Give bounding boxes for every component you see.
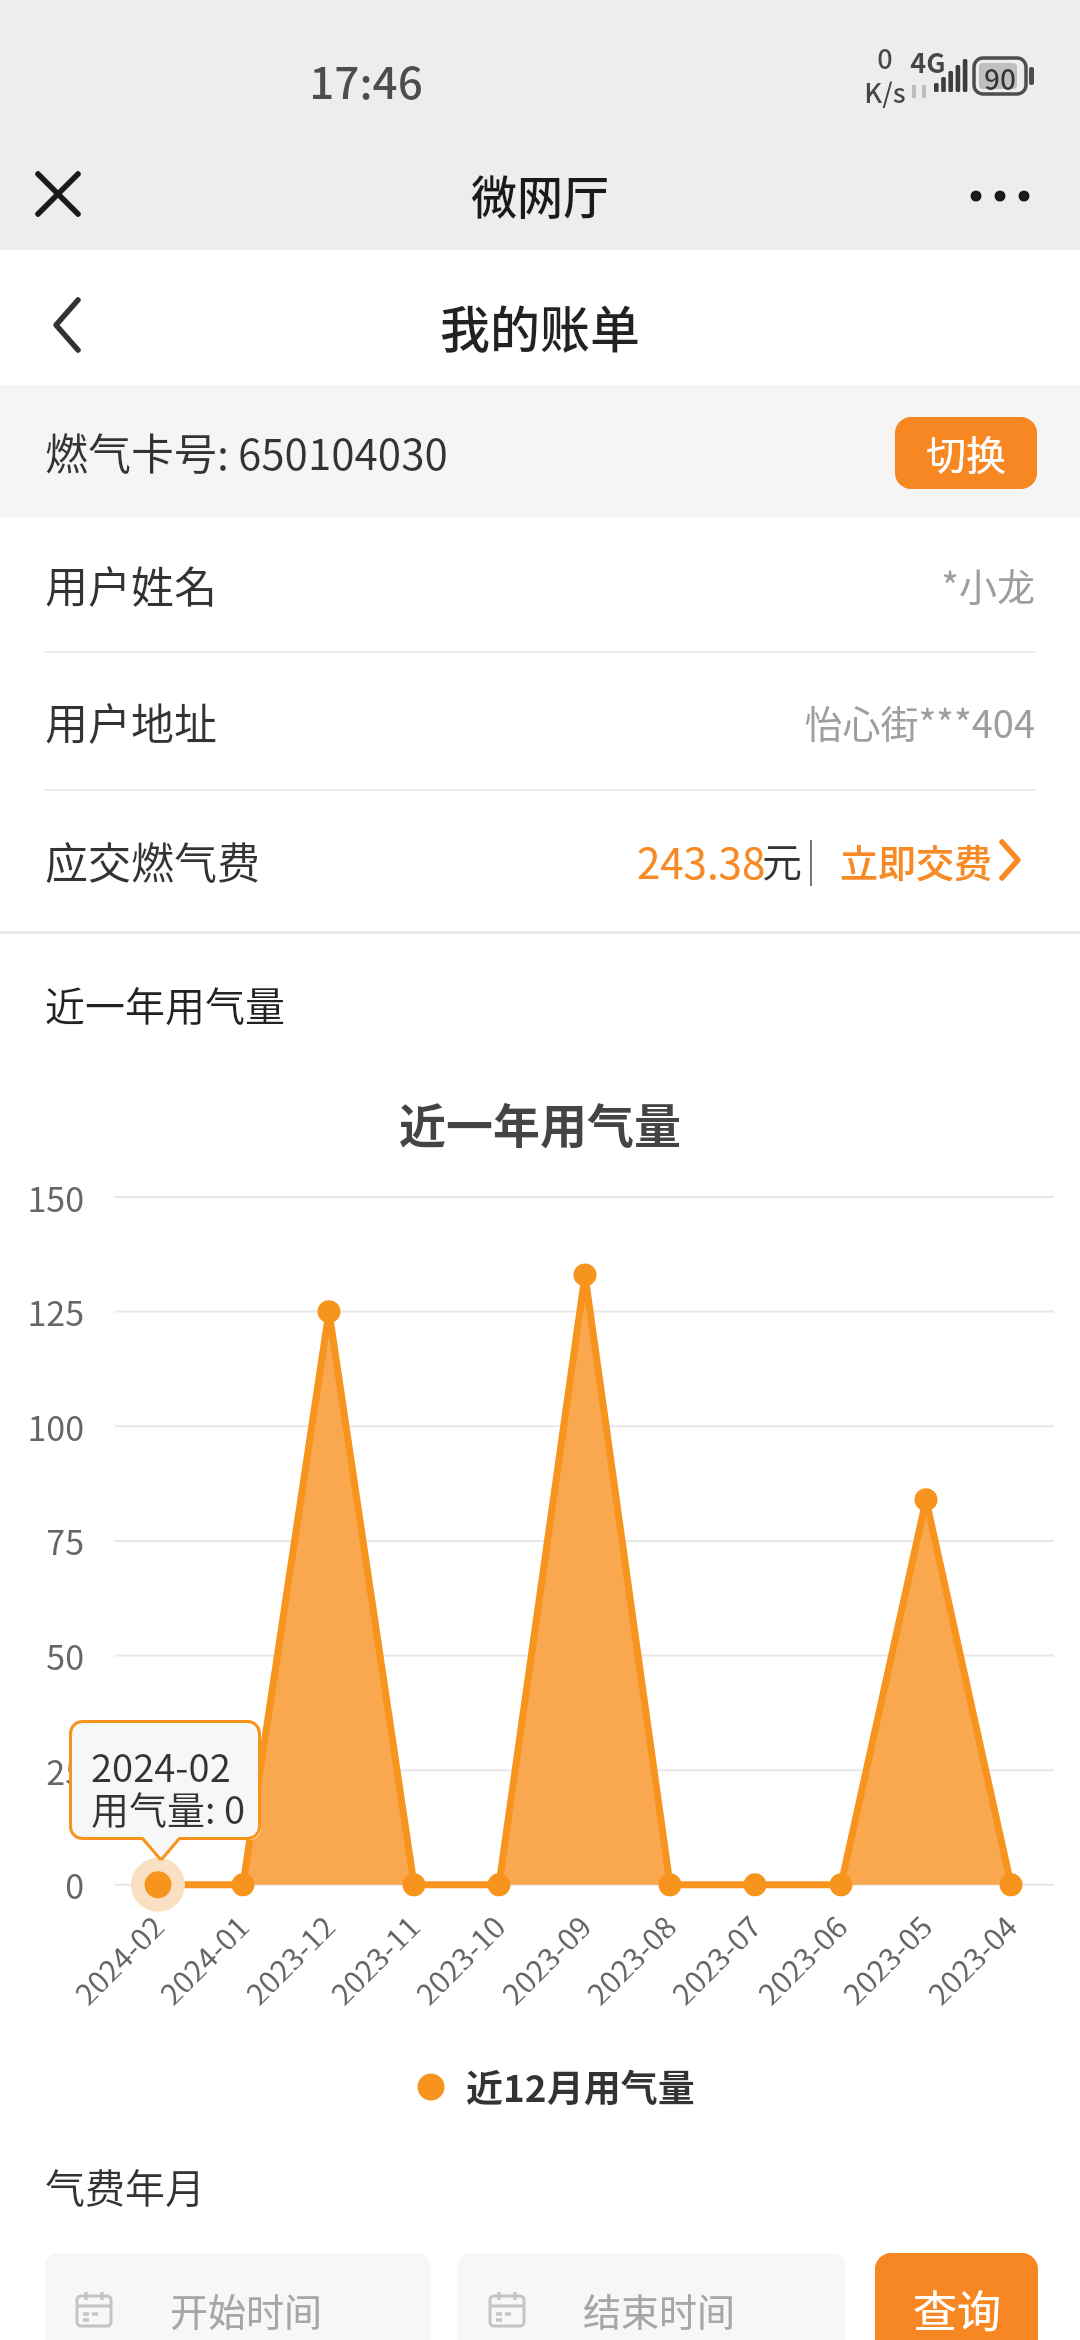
staticText: 元 (762, 831, 802, 889)
staticText: 75 (46, 1516, 84, 1565)
button[interactable] (950, 160, 1050, 230)
staticText: 2023-06 (746, 1905, 849, 2007)
staticText: 90 (984, 58, 1016, 94)
staticText: 切换 (926, 424, 1006, 482)
staticText: 2023-11 (319, 1905, 422, 2007)
staticText: 4G (910, 42, 946, 74)
staticText: 50 (46, 1631, 84, 1680)
staticText: 近一年用气量 (399, 1088, 681, 1152)
staticText: 用户姓名 (45, 553, 217, 615)
staticText: 150 (27, 1173, 84, 1222)
staticText: 开始时间 (170, 2282, 323, 2337)
staticText: 2023-10 (404, 1905, 507, 2007)
staticText: 近一年用气量 (45, 975, 285, 1033)
button[interactable]: 查询 (875, 2253, 1038, 2340)
button[interactable] (990, 830, 1035, 890)
staticText: *小龙 (941, 557, 1035, 612)
staticText: 燃气卡号: (45, 420, 229, 482)
button[interactable]: 切换 (895, 417, 1037, 489)
staticText: 17:46 (309, 48, 423, 104)
staticText: 用气量: 0 (91, 1780, 246, 1828)
staticText: 2023-12 (234, 1905, 337, 2007)
staticText: 2023-09 (490, 1905, 593, 2007)
button[interactable]: 开始时间 (45, 2253, 430, 2340)
staticText: 立即交费 (840, 833, 993, 888)
staticText: 2023-05 (831, 1905, 934, 2007)
staticText: 2024-01 (148, 1905, 251, 2007)
button[interactable] (20, 156, 96, 232)
staticText: 2024-02 (63, 1905, 166, 2007)
staticText: 2024-02 (91, 1738, 231, 1786)
staticText: 125 (27, 1287, 84, 1336)
staticText: 650104030 (238, 421, 448, 482)
staticText: 查询 (913, 2277, 1001, 2340)
staticText: 0 (877, 38, 893, 72)
staticText: 2023-07 (660, 1905, 763, 2007)
staticText: 2023-08 (575, 1905, 678, 2007)
staticText: 微网厅 (471, 161, 609, 228)
staticText: 100 (27, 1402, 84, 1451)
staticText: K/s (864, 72, 906, 108)
staticText: 用户地址 (45, 690, 217, 752)
staticText: 气费年月 (45, 2157, 205, 2215)
button[interactable] (30, 288, 106, 364)
staticText: 应交燃气费 (45, 829, 260, 891)
staticText: 怡心街***404 (804, 694, 1035, 749)
button[interactable] (620, 795, 1035, 925)
staticText: 25 (46, 1746, 84, 1795)
staticText: 近12月用气量 (466, 2059, 695, 2113)
staticText: 243.38 (637, 830, 766, 891)
staticText: 2023-04 (916, 1905, 1019, 2007)
staticText: 0 (65, 1860, 84, 1909)
staticText: 我的账单 (440, 290, 640, 362)
staticText: 结束时间 (583, 2282, 736, 2337)
button[interactable]: 结束时间 (458, 2253, 845, 2340)
